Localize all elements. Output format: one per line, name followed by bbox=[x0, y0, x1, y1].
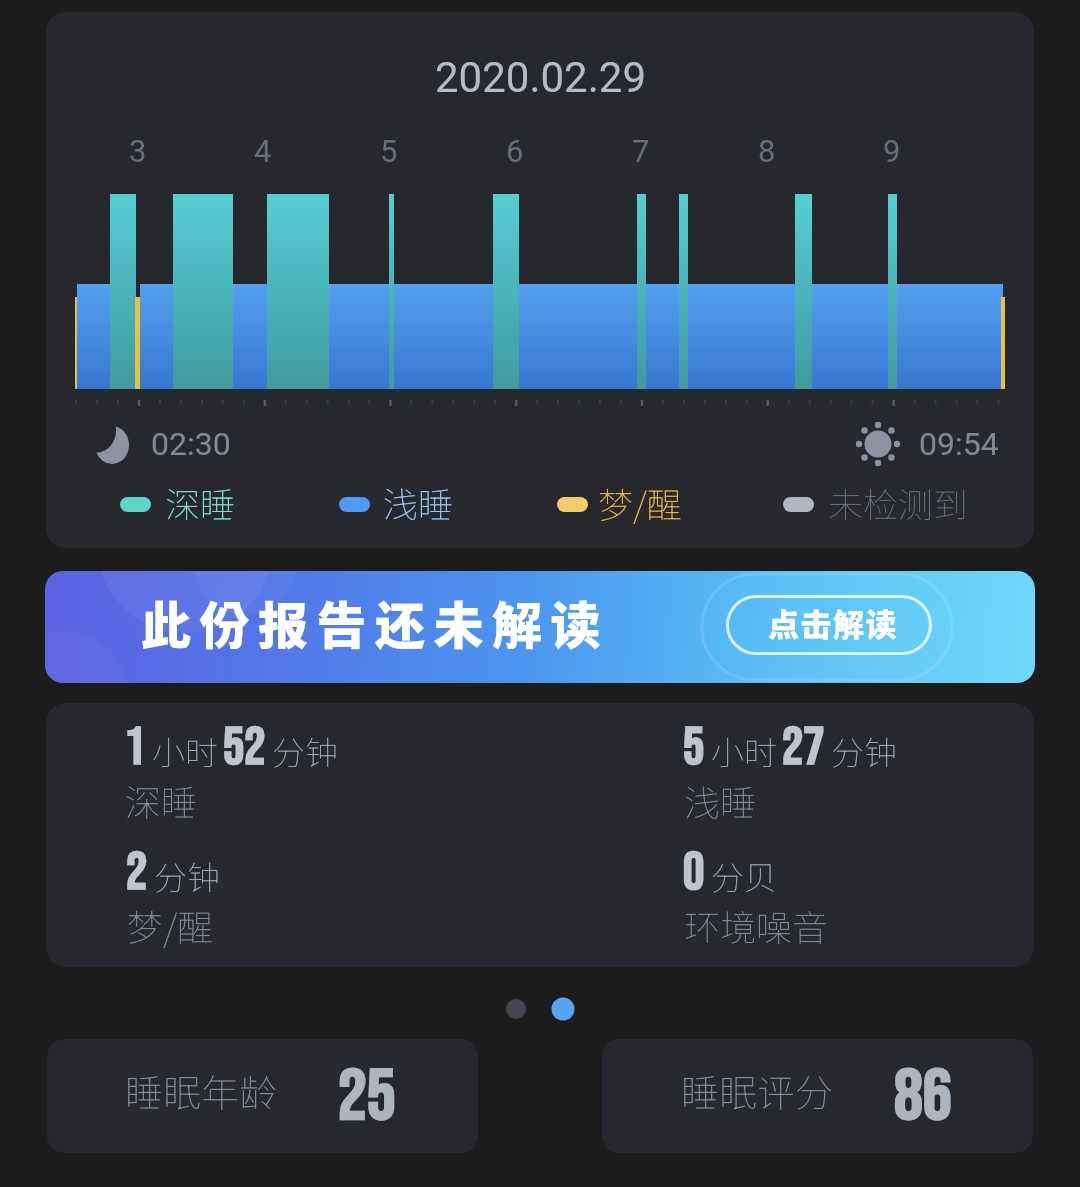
staticText: 0 bbox=[683, 841, 705, 905]
staticText: 8 bbox=[758, 133, 776, 169]
button[interactable]: 深睡 bbox=[112, 473, 289, 525]
button[interactable]: Page 2 bbox=[543, 989, 587, 1031]
staticText: 分钟 bbox=[154, 852, 220, 900]
staticText: 3 bbox=[129, 133, 147, 169]
staticText: 2 bbox=[126, 841, 148, 905]
button[interactable]: 点击解读 bbox=[726, 595, 932, 655]
button[interactable]: 浅睡 bbox=[331, 473, 507, 525]
staticText: 分贝 bbox=[711, 852, 777, 900]
staticText: 浅睡 bbox=[383, 477, 454, 528]
staticText: 25 bbox=[338, 1054, 396, 1140]
staticText: 深睡 bbox=[125, 774, 198, 826]
staticText: 分钟 bbox=[272, 727, 338, 775]
staticText: 5 bbox=[683, 716, 705, 780]
other: Wake time bbox=[856, 422, 900, 466]
staticText: 02:30 bbox=[151, 425, 231, 463]
staticText: 52 bbox=[223, 716, 266, 780]
button[interactable]: 梦/醒 bbox=[549, 473, 722, 525]
staticText: 梦/醒 bbox=[598, 477, 682, 528]
staticText: 浅睡 bbox=[684, 774, 757, 826]
staticText: 1 bbox=[124, 716, 146, 780]
staticText: 梦/醒 bbox=[127, 899, 214, 951]
staticText: 2020.02.29 bbox=[435, 53, 646, 102]
staticText: 睡眠评分 bbox=[681, 1063, 834, 1118]
staticText: 点击解读 bbox=[768, 600, 898, 645]
staticText: 6 bbox=[506, 133, 524, 169]
staticText: 环境噪音 bbox=[684, 899, 829, 951]
button[interactable]: 睡眠评分 bbox=[602, 1039, 1033, 1153]
staticText: 5 bbox=[380, 133, 398, 169]
staticText: 86 bbox=[894, 1054, 952, 1140]
staticText: 4 bbox=[254, 133, 272, 169]
staticText: 27 bbox=[782, 716, 825, 780]
staticText: 分钟 bbox=[831, 727, 897, 775]
staticText: 小时 bbox=[711, 727, 777, 775]
button[interactable]: 未检测到 bbox=[775, 473, 952, 525]
staticText: 此份报告还未解读 bbox=[141, 586, 609, 658]
staticText: 7 bbox=[632, 133, 650, 169]
other: Bedtime bbox=[95, 424, 129, 464]
button[interactable]: 睡眠年龄 bbox=[47, 1039, 478, 1153]
button[interactable]: 此份报告还未解读 bbox=[45, 571, 1035, 683]
button[interactable]: Page 1 bbox=[496, 989, 540, 1031]
staticText: 未检测到 bbox=[828, 477, 969, 528]
staticText: 09:54 bbox=[919, 425, 999, 463]
staticText: 9 bbox=[883, 133, 901, 169]
staticText: 小时 bbox=[152, 727, 218, 775]
staticText: 深睡 bbox=[165, 477, 236, 528]
staticText: 睡眠年龄 bbox=[125, 1063, 278, 1118]
